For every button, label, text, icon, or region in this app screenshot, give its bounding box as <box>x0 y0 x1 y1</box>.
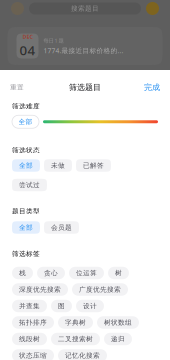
staticText: 位运算 <box>76 269 97 277</box>
button[interactable]: 全部 <box>12 221 40 234</box>
staticText: 筛选状态 <box>12 146 40 154</box>
staticText: 每日 1 题 <box>43 37 63 44</box>
staticText: 线段树 <box>19 335 40 343</box>
staticText: 全部 <box>19 161 33 170</box>
button[interactable]: 广度优先搜索 <box>72 283 128 296</box>
staticText: 筛选标签 <box>12 250 40 258</box>
button[interactable]: 重置 <box>10 79 36 95</box>
staticText: 全部 <box>18 118 32 126</box>
staticText: 树 <box>115 269 122 277</box>
staticText: 并查集 <box>19 302 40 310</box>
button[interactable]: 树 <box>108 267 129 279</box>
staticText: 搜索题目 <box>71 4 99 13</box>
button[interactable]: 已解答 <box>76 159 111 172</box>
button[interactable]: 完成 <box>134 79 160 95</box>
button[interactable]: 尝试过 <box>12 179 47 191</box>
button[interactable]: 全部 <box>12 159 40 172</box>
button[interactable]: 拓扑排序 <box>12 316 54 329</box>
staticText: 树状数组 <box>104 318 132 327</box>
button[interactable]: 栈 <box>12 267 33 279</box>
button[interactable]: 并查集 <box>12 300 47 312</box>
button[interactable]: 贪心 <box>37 267 65 279</box>
staticText: 尝试过 <box>19 181 40 189</box>
button[interactable]: 线段树 <box>12 333 47 345</box>
button[interactable]: 递归 <box>104 333 132 345</box>
staticText: 二叉搜索树 <box>58 335 93 343</box>
button[interactable]: 设计 <box>76 300 104 312</box>
staticText: 广度优先搜索 <box>79 285 121 294</box>
staticText: 重置 <box>10 83 24 91</box>
button[interactable]: 全部 <box>12 115 39 128</box>
staticText: 拓扑排序 <box>19 318 47 327</box>
staticText: 栈 <box>19 269 26 277</box>
staticText: 贪心 <box>44 269 58 277</box>
button[interactable]: 未做 <box>44 159 72 172</box>
staticText: 题目类型 <box>12 207 40 215</box>
staticText: DEC <box>22 33 32 40</box>
button[interactable]: 状态压缩 <box>12 349 54 360</box>
staticText: 设计 <box>83 302 97 310</box>
staticText: 会员题 <box>51 223 72 232</box>
staticText: 未做 <box>51 161 65 170</box>
staticText: 记忆化搜索 <box>65 351 100 360</box>
staticText: 字典树 <box>65 318 86 327</box>
staticText: 04 <box>19 41 35 59</box>
staticText: 深度优先搜索 <box>19 285 61 294</box>
staticText: 全部 <box>19 223 33 232</box>
staticText: 递归 <box>111 335 125 343</box>
button[interactable]: 二叉搜索树 <box>51 333 100 345</box>
button[interactable]: 深度优先搜索 <box>12 283 68 296</box>
staticText: 筛选难度 <box>12 102 40 110</box>
staticText: 筛选题目 <box>69 82 101 92</box>
button[interactable]: 图 <box>51 300 72 312</box>
staticText: 图 <box>58 302 65 310</box>
staticText: 状态压缩 <box>19 351 47 360</box>
button[interactable]: 字典树 <box>58 316 93 329</box>
button[interactable]: 位运算 <box>69 267 104 279</box>
button[interactable]: 记忆化搜索 <box>58 349 107 360</box>
staticText: 已解答 <box>83 161 104 170</box>
staticText: 完成 <box>144 82 160 92</box>
button[interactable]: 树状数组 <box>97 316 139 329</box>
button[interactable]: 会员题 <box>44 221 79 234</box>
staticText: 1774.最接近目标价格的... <box>43 46 123 55</box>
